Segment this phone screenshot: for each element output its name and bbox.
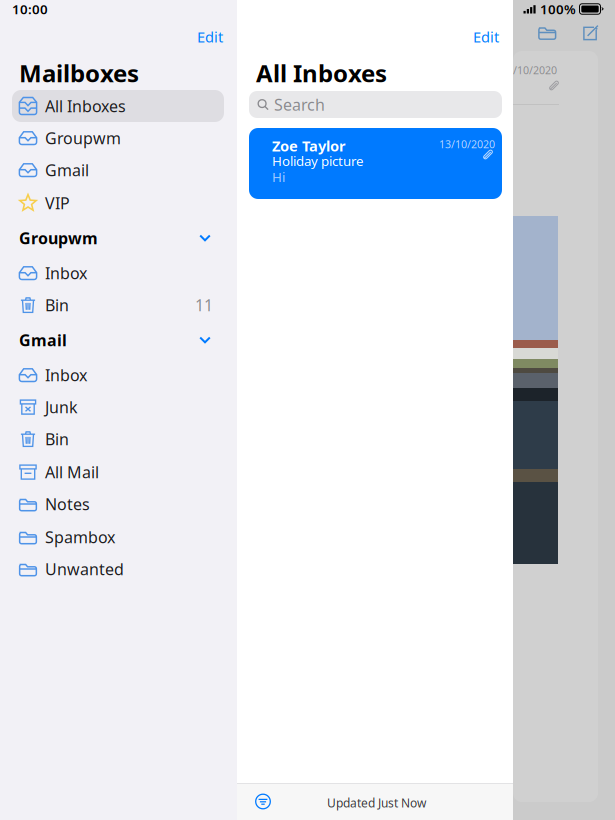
staticText: 11 bbox=[195, 294, 213, 316]
staticText: All Inboxes bbox=[45, 95, 126, 117]
button[interactable]: Spambox bbox=[12, 521, 224, 553]
button[interactable]: Unwanted bbox=[12, 553, 224, 585]
staticText: Gmail bbox=[19, 329, 67, 351]
staticText: Holiday picture bbox=[272, 152, 364, 170]
staticText: Groupwm bbox=[19, 227, 98, 249]
button[interactable]: Collapse Gmail bbox=[195, 331, 215, 349]
staticText: 10:00 bbox=[12, 0, 48, 18]
button[interactable]: Edit bbox=[188, 20, 232, 53]
button[interactable]: Bin bbox=[12, 289, 224, 321]
staticText: Bin bbox=[45, 428, 69, 450]
button[interactable]: Move to folder bbox=[538, 25, 556, 40]
staticText: Updated Just Now bbox=[327, 795, 426, 811]
staticText: VIP bbox=[45, 192, 70, 214]
staticText: All Mail bbox=[45, 461, 99, 483]
staticText: Mailboxes bbox=[19, 57, 139, 89]
button[interactable]: Filter bbox=[248, 786, 278, 816]
button[interactable]: VIP bbox=[12, 187, 224, 219]
staticText: All Inboxes bbox=[256, 57, 387, 89]
button[interactable]: Inbox bbox=[12, 359, 224, 391]
button[interactable]: Collapse Groupwm bbox=[195, 229, 215, 247]
button[interactable]: Groupwm bbox=[12, 122, 224, 154]
staticText: 13/10/2020 bbox=[439, 137, 495, 151]
button[interactable]: Junk bbox=[12, 391, 224, 423]
button[interactable]: All Inboxes bbox=[12, 90, 224, 122]
button[interactable]: Compose bbox=[583, 25, 598, 40]
staticText: Edit bbox=[197, 27, 223, 46]
staticText: Inbox bbox=[45, 364, 87, 386]
button[interactable]: Notes bbox=[12, 488, 224, 520]
staticText: /10/2020 bbox=[513, 63, 557, 77]
staticText: Unwanted bbox=[45, 558, 124, 580]
button[interactable]: Edit bbox=[464, 20, 508, 53]
staticText: Search bbox=[274, 94, 325, 115]
staticText: Gmail bbox=[45, 159, 89, 181]
staticText: Junk bbox=[45, 396, 78, 418]
staticText: Inbox bbox=[45, 262, 87, 284]
staticText: Edit bbox=[473, 27, 499, 46]
staticText: Notes bbox=[45, 493, 90, 515]
button[interactable]: Bin bbox=[12, 423, 224, 455]
button[interactable]: Gmail bbox=[12, 154, 224, 186]
staticText: Bin bbox=[45, 294, 69, 316]
staticText: 100% bbox=[540, 0, 576, 18]
button[interactable]: All Mail bbox=[12, 456, 224, 488]
staticText: Groupwm bbox=[45, 127, 121, 149]
staticText: Spambox bbox=[45, 526, 115, 548]
staticText: Zoe Taylor bbox=[272, 136, 346, 155]
button[interactable]: Inbox bbox=[12, 257, 224, 289]
staticText: Hi bbox=[272, 168, 285, 186]
button[interactable]: Zoe Taylor bbox=[249, 128, 502, 199]
